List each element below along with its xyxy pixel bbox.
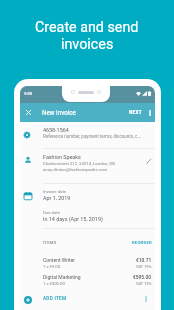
staticText: Create and send (35, 19, 139, 36)
staticText: 1 x €300.00 (43, 281, 65, 286)
button[interactable]: Fashion Speaks (20, 148, 155, 183)
staticText: invoices (61, 36, 114, 53)
button[interactable]: More options (144, 106, 155, 120)
staticText: NEXT (129, 110, 142, 115)
staticText: €595.00 (133, 274, 152, 280)
staticText: 4658-1564 (43, 127, 69, 133)
staticText: Content Writer (43, 257, 76, 263)
staticText: ADD ITEM (43, 296, 67, 302)
staticText: anny.clinton@fashionspeaks.com (43, 167, 108, 172)
staticText: VAT 19% (136, 281, 152, 286)
staticText: €10.71 (136, 257, 152, 263)
staticText: New invoice (42, 109, 76, 116)
staticText: VAT 19% (136, 264, 152, 269)
staticText: REORDER (132, 240, 152, 245)
button[interactable]: REORDER (129, 238, 155, 247)
staticText: ITEMS (43, 240, 57, 245)
staticText: Fashion Speaks (43, 154, 81, 160)
staticText: In 14 days (Apr 15, 2019) (43, 216, 103, 222)
button[interactable]: Item options (141, 294, 151, 304)
button[interactable]: Edit client (144, 156, 154, 166)
staticText: Invoice date (43, 189, 67, 194)
staticText: 1 x €9.00 (43, 264, 61, 269)
staticText: Due date (43, 210, 60, 215)
button[interactable]: NEXT (126, 106, 145, 119)
button[interactable]: Close (20, 103, 36, 122)
staticText: Reference number, payment terms, discoun… (43, 134, 142, 139)
button[interactable]: Content Writer (20, 256, 155, 273)
staticText: Digital Marketing (43, 274, 81, 280)
button[interactable]: Invoice date (20, 183, 155, 228)
button[interactable]: ADD ITEM (20, 292, 155, 310)
button[interactable]: Digital Marketing (20, 273, 155, 290)
staticText: Charlonstreet 212, 24214, London, GB (43, 161, 115, 166)
button[interactable]: 4658-1564 (20, 122, 155, 148)
staticText: 9:00 (24, 91, 33, 96)
staticText: Apr 1, 2019 (43, 195, 71, 201)
